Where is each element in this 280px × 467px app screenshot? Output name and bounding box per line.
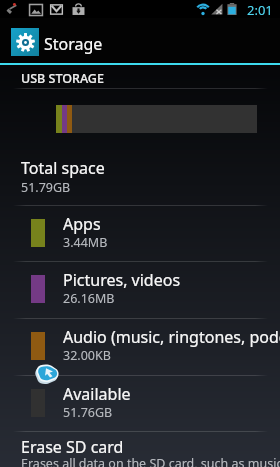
staticText: Storage bbox=[44, 33, 103, 55]
staticText: Erase SD card bbox=[21, 436, 124, 458]
staticText: Total space bbox=[21, 157, 105, 179]
button[interactable]: Available bbox=[0, 375, 280, 431]
staticText: 51.76GB bbox=[63, 404, 113, 421]
button[interactable]: Apps bbox=[0, 205, 280, 261]
staticText: Pictures, videos bbox=[63, 269, 280, 291]
other: Settings bbox=[11, 28, 39, 56]
staticText: Apps bbox=[63, 213, 280, 235]
staticText: 3.44MB bbox=[63, 234, 108, 251]
staticText: Audio (music, ringtones, podcasts) bbox=[63, 326, 280, 348]
button[interactable]: Settings bbox=[0, 18, 280, 63]
button[interactable]: Erase SD card bbox=[0, 431, 280, 467]
staticText: 32.00KB bbox=[63, 347, 111, 364]
staticText: USB STORAGE bbox=[21, 70, 104, 87]
button[interactable]: Total space bbox=[0, 147, 280, 205]
staticText: 26.16MB bbox=[63, 290, 115, 307]
button[interactable]: Pictures, videos bbox=[0, 261, 280, 317]
staticText: Available bbox=[63, 383, 280, 405]
staticText: Erases all data on the SD card, such as … bbox=[21, 455, 280, 467]
button[interactable]: Audio (music, ringtones, podcasts) bbox=[0, 318, 280, 374]
staticText: 51.79GB bbox=[21, 179, 71, 196]
staticText: 2:01 bbox=[247, 1, 273, 19]
